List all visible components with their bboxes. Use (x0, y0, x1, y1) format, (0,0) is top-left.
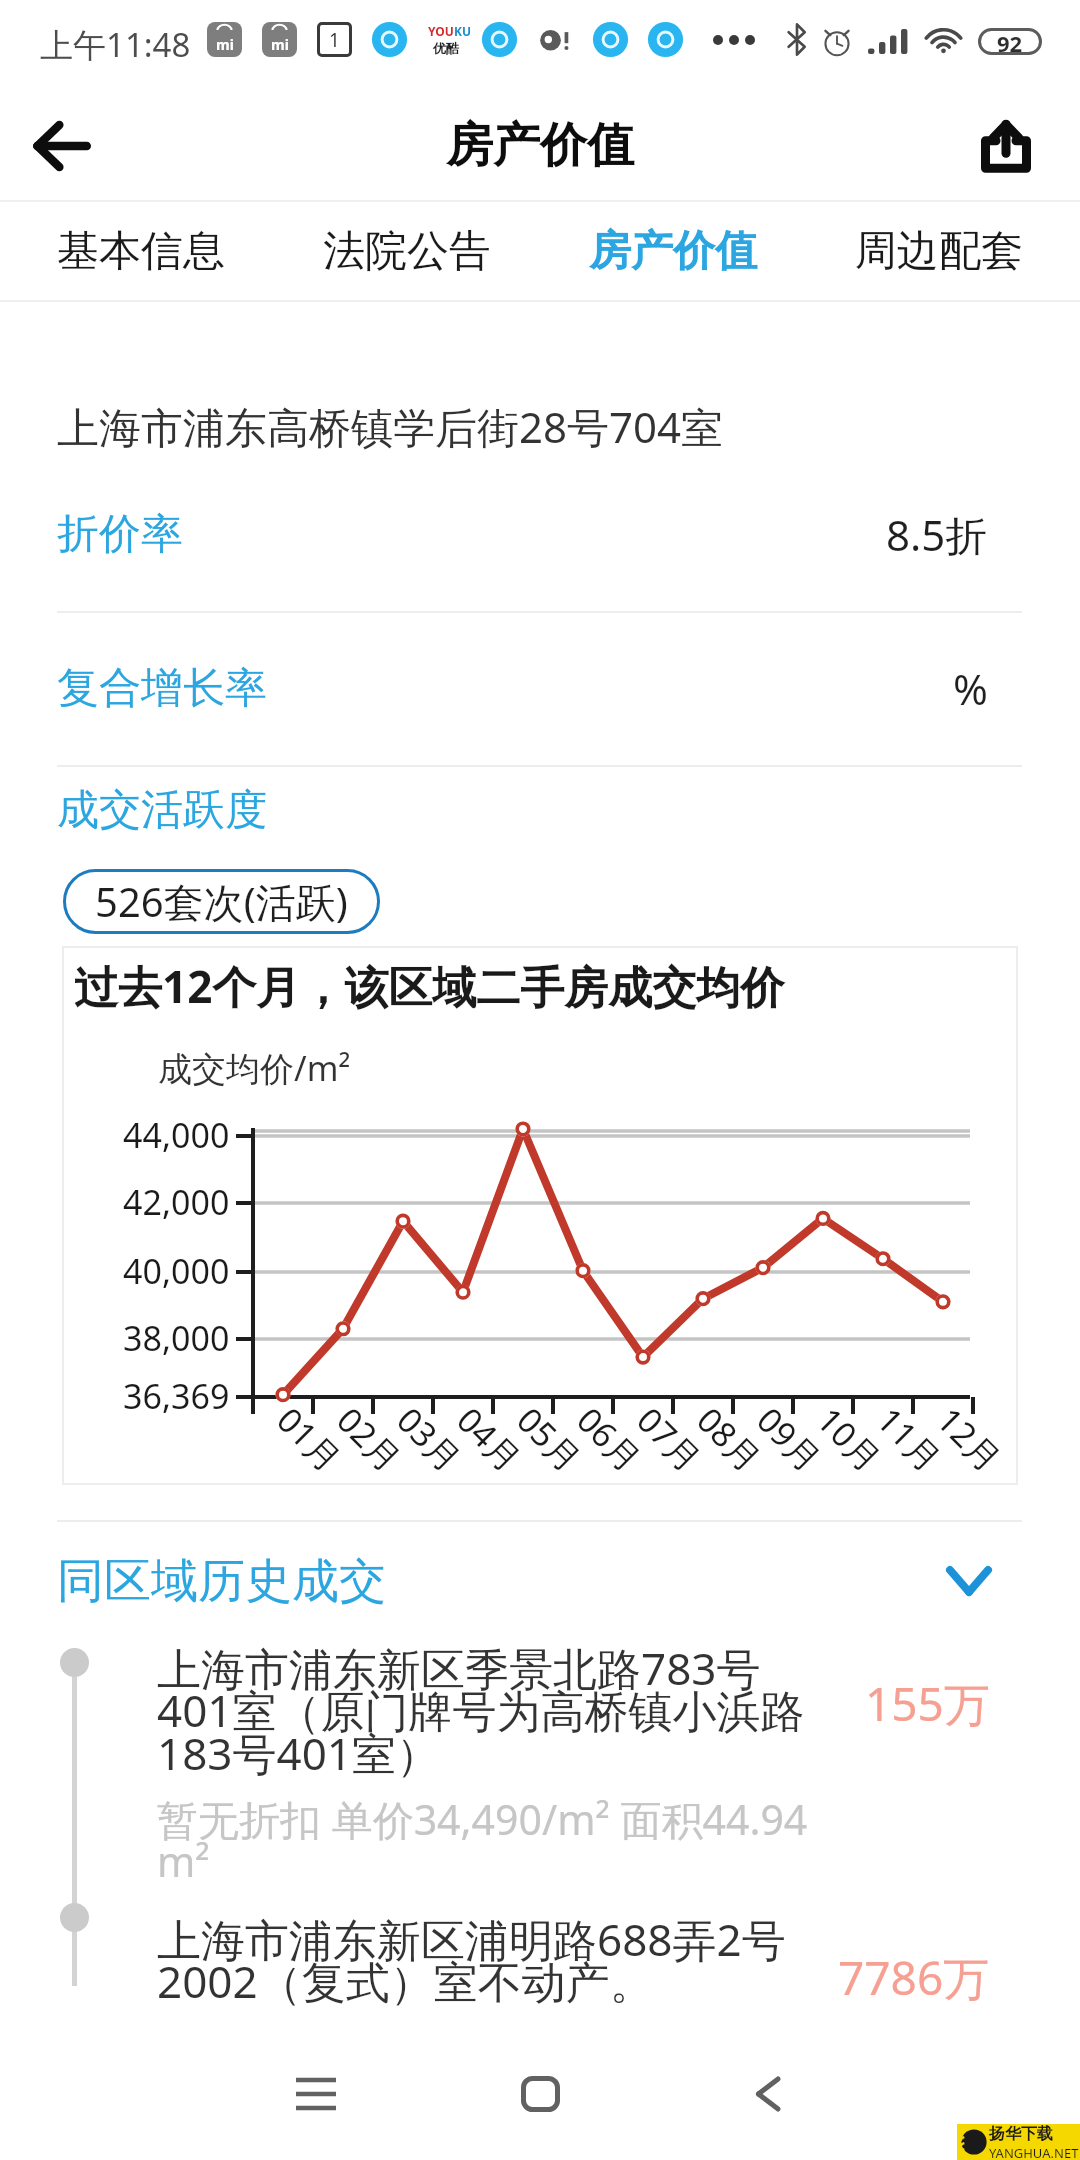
staticText: 04月 (447, 1397, 531, 1481)
button[interactable]: Recent apps (261, 2050, 371, 2160)
staticText: 40,000 (123, 1248, 230, 1294)
button[interactable]: Back (713, 2050, 823, 2160)
button[interactable]: 法院公告 (274, 202, 540, 300)
staticText: mi (271, 35, 289, 54)
staticText: 03月 (387, 1397, 471, 1481)
staticText: 折价率 (57, 508, 183, 561)
staticText: 暂无折扣 单价34,490/m² 面积44.94 m² (157, 1791, 808, 1889)
staticText: 上海市浦东新区浦明路688弄2号2002（复式）室不动产。 (157, 1909, 817, 2011)
staticText: 上海市浦东新区季景北路783号401室（原门牌号为高桥镇小浜路183号401室） (157, 1638, 817, 1783)
staticText: KU (454, 23, 463, 39)
button[interactable]: Share (961, 101, 1051, 191)
staticText: 周边配套 (855, 225, 1023, 278)
staticText: 11月 (867, 1397, 951, 1481)
button[interactable]: Home (485, 2050, 595, 2160)
staticText: YANGHUA.NET (989, 2144, 1079, 2160)
staticText: 过去12个月，该区域二手房成交均价 (74, 956, 785, 1016)
staticText: YOU (428, 23, 454, 39)
staticText: 8.5折 (886, 506, 988, 563)
staticText: % (953, 660, 988, 717)
staticText: 05月 (507, 1397, 591, 1481)
staticText: 成交均价/m² (158, 1045, 351, 1091)
staticText: 基本信息 (57, 225, 225, 278)
button[interactable]: 上海市浦东新区浦明路688弄2号2002（复式）室不动产。 (157, 1909, 817, 2011)
staticText: 155万 (865, 1672, 990, 1735)
staticText: 44,000 (123, 1112, 230, 1158)
staticText: 房产价值 (446, 116, 634, 175)
staticText: 10月 (807, 1397, 891, 1481)
staticText: 07月 (627, 1397, 711, 1481)
staticText: 法院公告 (323, 225, 491, 278)
button[interactable]: 周边配套 (806, 202, 1072, 300)
staticText: 08月 (687, 1397, 771, 1481)
staticText: 09月 (747, 1397, 831, 1481)
button[interactable]: 上海市浦东新区季景北路783号401室（原门牌号为高桥镇小浜路183号401室） (157, 1638, 817, 1783)
staticText: 36,369 (123, 1373, 230, 1419)
staticText: 同区域历史成交 (57, 1552, 386, 1611)
staticText: 上午11:48 (40, 22, 191, 67)
staticText: 02月 (327, 1397, 411, 1481)
staticText: 01月 (267, 1397, 351, 1481)
staticText: 成交活跃度 (57, 784, 267, 837)
staticText: 92 (997, 28, 1023, 55)
staticText: 优酷 (433, 40, 459, 56)
staticText: 38,000 (123, 1315, 230, 1361)
staticText: 房产价值 (589, 225, 757, 278)
staticText: 06月 (567, 1397, 651, 1481)
staticText: mi (216, 35, 234, 54)
staticText: 上海市浦东高桥镇学后街28号704室 (57, 398, 724, 455)
button[interactable]: 基本信息 (8, 202, 274, 300)
staticText: 1 (329, 27, 340, 53)
button[interactable]: 同区域历史成交 (57, 1543, 992, 1619)
staticText: 扬华下载 (989, 2124, 1053, 2144)
staticText: 7786万 (838, 1946, 990, 2009)
staticText: 42,000 (123, 1179, 230, 1225)
button[interactable]: 房产价值 (540, 202, 806, 300)
staticText: 12月 (927, 1397, 1011, 1481)
staticText: 复合增长率 (57, 662, 267, 715)
button[interactable]: Back (16, 101, 106, 191)
staticText: 526套次(活跃) (95, 874, 348, 929)
